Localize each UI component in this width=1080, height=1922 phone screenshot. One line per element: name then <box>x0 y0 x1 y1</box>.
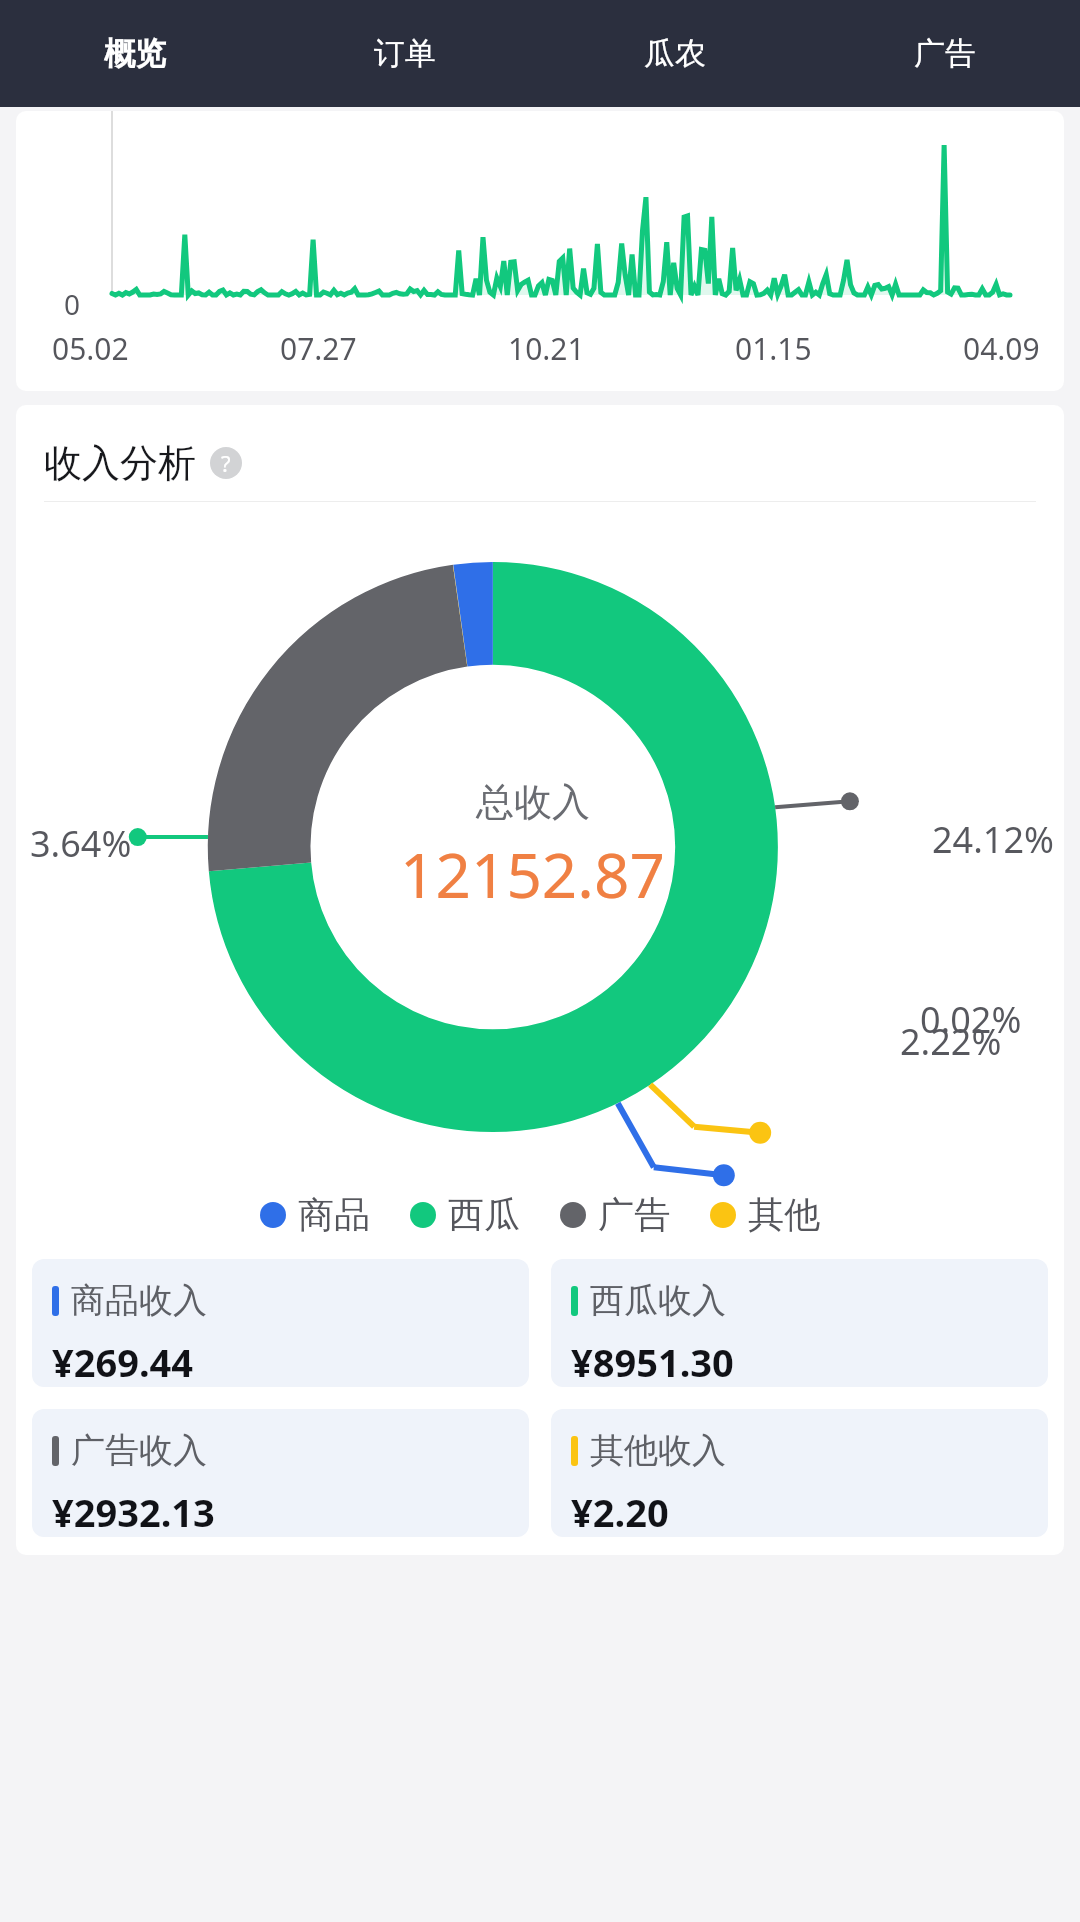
staticText: 04.09 <box>963 328 1040 369</box>
staticText: 其他 <box>748 1192 820 1237</box>
staticText: 概览 <box>104 34 166 73</box>
staticText: 07.27 <box>280 328 357 369</box>
button[interactable]: 广告 <box>560 1192 670 1237</box>
staticText: ¥269.44 <box>52 1336 194 1387</box>
button[interactable]: 商品 <box>260 1192 370 1237</box>
staticText: ¥2.20 <box>571 1486 669 1537</box>
staticText: 广告 <box>914 34 976 73</box>
button[interactable]: 广告收入 <box>32 1409 529 1537</box>
staticText: ? <box>221 448 231 478</box>
staticText: 商品 <box>298 1192 370 1237</box>
staticText: ¥8951.30 <box>571 1336 734 1387</box>
staticText: 商品收入 <box>71 1279 207 1322</box>
staticText: 0.02% <box>920 995 1022 1044</box>
staticText: 24.12% <box>932 815 1054 864</box>
staticText: 10.21 <box>508 328 585 369</box>
staticText: 瓜农 <box>644 34 706 73</box>
staticText: 订单 <box>374 34 436 73</box>
button[interactable]: 西瓜收入 <box>551 1259 1048 1387</box>
button[interactable]: 其他 <box>710 1192 820 1237</box>
staticText: 0 <box>64 285 81 323</box>
button[interactable]: 概览 <box>0 0 270 107</box>
staticText: 西瓜 <box>448 1192 520 1237</box>
staticText: 其他收入 <box>590 1429 726 1472</box>
staticText: ¥2932.13 <box>52 1486 215 1537</box>
staticText: 12152.87 <box>400 832 665 916</box>
staticText: 05.02 <box>52 328 129 369</box>
staticText: 西瓜收入 <box>590 1279 726 1322</box>
button[interactable]: 瓜农 <box>540 0 810 107</box>
staticText: 总收入 <box>476 778 590 826</box>
button[interactable]: 商品收入 <box>32 1259 529 1387</box>
button[interactable]: 帮助 <box>210 447 242 479</box>
button[interactable]: 西瓜 <box>410 1192 520 1237</box>
staticText: 2.22% <box>900 1017 1002 1066</box>
staticText: 广告收入 <box>71 1429 207 1472</box>
button[interactable]: 其他收入 <box>551 1409 1048 1537</box>
button[interactable]: 订单 <box>270 0 540 107</box>
staticText: 广告 <box>598 1192 670 1237</box>
button[interactable]: 广告 <box>810 0 1080 107</box>
staticText: 01.15 <box>735 328 812 369</box>
staticText: 收入分析 <box>44 439 196 487</box>
staticText: 3.64% <box>30 819 132 868</box>
